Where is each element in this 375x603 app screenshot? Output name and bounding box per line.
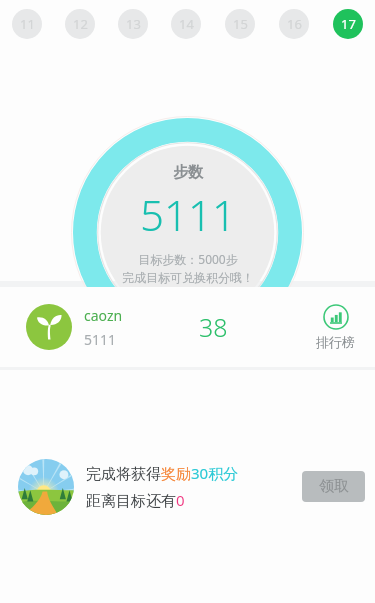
button[interactable]: 13 — [118, 9, 148, 39]
staticText: 14 — [179, 15, 194, 33]
staticText: 38 — [199, 310, 228, 344]
staticText: 5111 — [140, 186, 236, 243]
button[interactable]: 排行榜 — [312, 300, 359, 354]
button[interactable]: 12 — [65, 9, 95, 39]
staticText: 12 — [73, 15, 88, 33]
staticText: caozn — [84, 306, 123, 325]
button[interactable]: 16 — [279, 9, 309, 39]
staticText: 距离目标还有0 — [86, 490, 185, 510]
staticText: 16 — [287, 15, 302, 33]
staticText: 步数 — [173, 163, 203, 182]
staticText: 17 — [341, 15, 356, 33]
staticText: 完成将获得奖励30积分 — [86, 463, 239, 483]
staticText: 领取 — [319, 477, 349, 496]
staticText: 11 — [20, 15, 35, 33]
button[interactable]: caozn — [0, 287, 375, 367]
staticText: 5111 — [84, 330, 117, 349]
staticText: 13 — [126, 15, 141, 33]
staticText: 15 — [233, 15, 248, 33]
button[interactable]: 14 — [171, 9, 201, 39]
button[interactable]: 11 — [12, 9, 42, 39]
staticText: 目标步数：5000步 — [138, 251, 238, 267]
button[interactable]: 15 — [225, 9, 255, 39]
button[interactable]: 领取 — [302, 471, 365, 502]
staticText: 排行榜 — [316, 334, 355, 350]
staticText: 完成目标可兑换积分哦！ — [122, 270, 254, 285]
button[interactable]: 17 — [333, 9, 363, 39]
